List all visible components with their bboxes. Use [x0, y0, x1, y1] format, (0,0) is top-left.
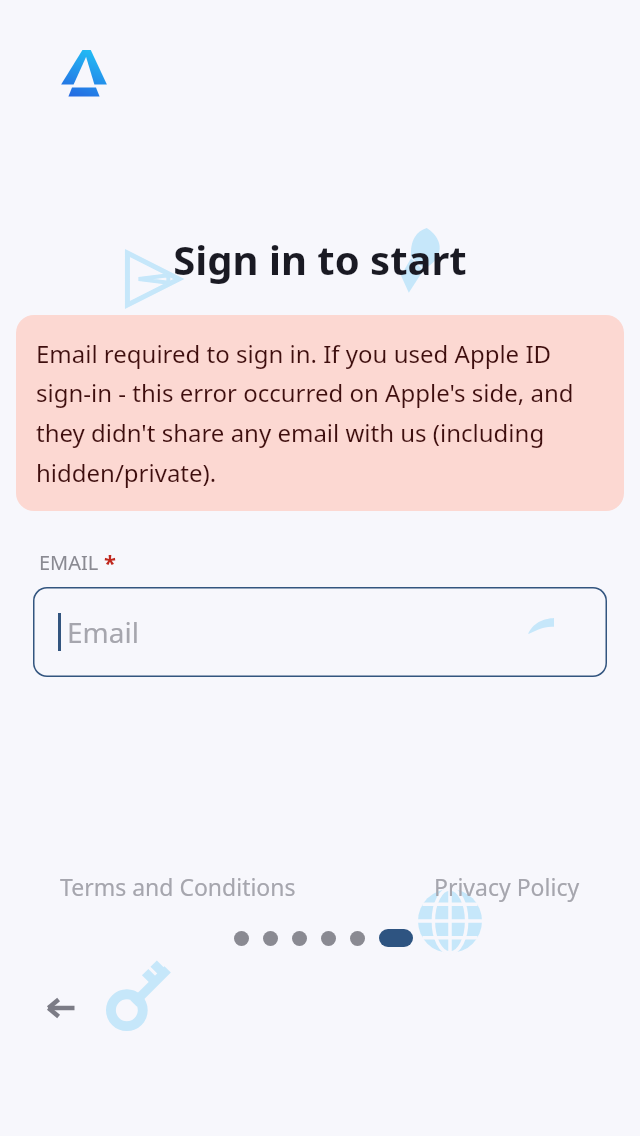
button[interactable] — [263, 931, 278, 946]
button[interactable]: Back — [38, 985, 84, 1031]
staticText: Terms and Conditions — [60, 871, 296, 902]
staticText: Sign in to start — [0, 232, 640, 286]
button[interactable] — [379, 929, 413, 947]
button[interactable]: Email — [33, 587, 607, 677]
staticText: * — [104, 547, 116, 577]
button[interactable]: Privacy Policy — [434, 871, 580, 902]
button[interactable] — [321, 931, 336, 946]
button[interactable] — [234, 931, 249, 946]
staticText: EMAIL — [39, 549, 104, 576]
staticText: Email — [67, 613, 139, 651]
staticText: Email required to sign in. If you used A… — [36, 337, 604, 489]
button[interactable]: Terms and Conditions — [60, 871, 296, 902]
button[interactable] — [350, 931, 365, 946]
staticText: Privacy Policy — [434, 871, 580, 902]
button[interactable] — [292, 931, 307, 946]
